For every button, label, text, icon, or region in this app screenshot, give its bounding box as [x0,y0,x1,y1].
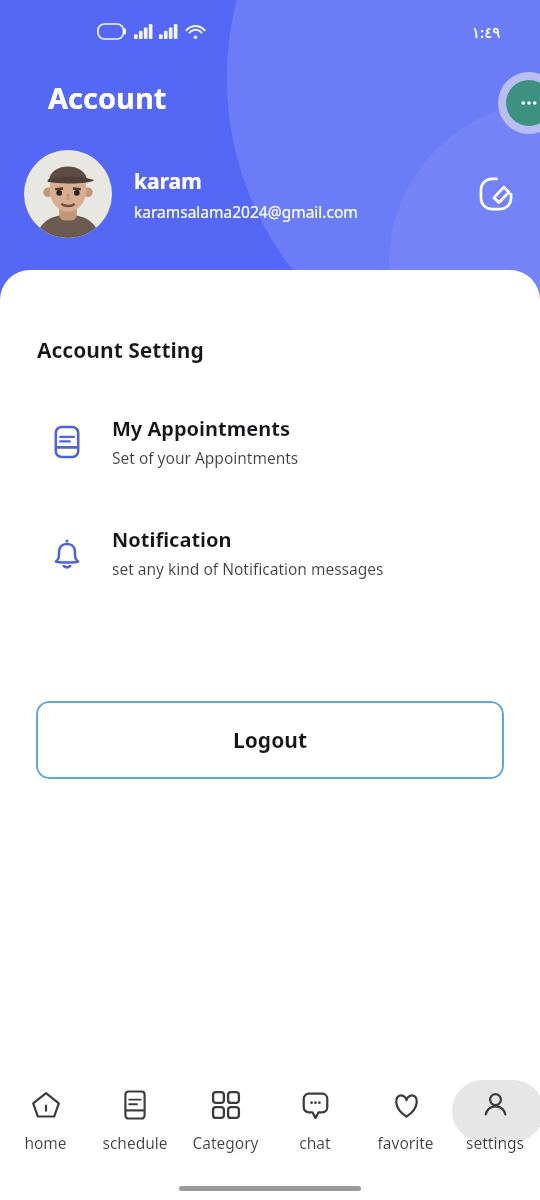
staticText: home [24,1132,67,1153]
staticText: Account [48,78,167,117]
button[interactable]: favorite [360,1070,450,1162]
staticText: karamsalama2024@gmail.com [134,201,358,222]
button[interactable]: Notification [0,522,540,583]
staticText: Notification [112,526,232,553]
button[interactable]: chat [270,1070,360,1162]
button[interactable]: Logout [36,701,504,779]
staticText: ١:٤٩ [472,22,501,42]
button[interactable]: Profile picture [24,150,112,238]
button[interactable]: home [0,1070,90,1162]
other: schedule [120,1090,150,1120]
other: chat [300,1090,331,1121]
button[interactable]: Edit profile [472,170,520,218]
other: Category [211,1090,241,1120]
button[interactable]: Category [180,1070,270,1162]
button[interactable]: schedule [90,1070,180,1162]
staticText: Category [192,1132,259,1153]
other: settings [480,1090,511,1121]
staticText: settings [466,1132,524,1153]
other: favorite [391,1090,422,1121]
staticText: Logout [233,726,308,755]
staticText: favorite [377,1132,434,1153]
staticText: Set of your Appointments [112,447,299,468]
staticText: chat [299,1132,331,1153]
button[interactable]: Chat bubble [498,72,540,134]
staticText: karam [134,167,202,196]
other: home [30,1089,62,1121]
staticText: schedule [102,1132,168,1153]
staticText: set any kind of Notification messages [112,558,384,579]
staticText: My Appointments [112,415,290,442]
staticText: Account Setting [37,336,204,365]
button[interactable]: My Appointments [0,411,540,472]
button[interactable]: settings [450,1070,540,1162]
